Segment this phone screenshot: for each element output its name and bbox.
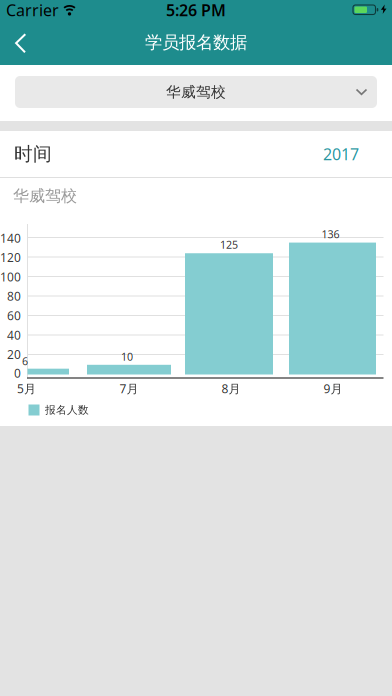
staticText: 136 [321, 227, 339, 241]
staticText: 120 [0, 249, 21, 265]
button[interactable]: 华威驾校 [15, 76, 377, 108]
staticText: 20 [7, 346, 21, 362]
staticText: 125 [220, 237, 238, 252]
staticText: Carrier [6, 0, 59, 21]
staticText: 40 [7, 327, 21, 343]
staticText: 报名人数 [45, 403, 89, 416]
staticText: 8月 [221, 380, 240, 396]
staticText: 80 [7, 288, 21, 304]
staticText: 华威驾校 [13, 186, 77, 206]
staticText: 6 [22, 354, 28, 368]
staticText: 5:26 PM [166, 0, 226, 21]
staticText: 100 [0, 269, 21, 285]
staticText: 时间 [14, 142, 52, 165]
staticText: 0 [14, 365, 21, 381]
button[interactable]: 时间 [0, 131, 392, 177]
staticText: 60 [7, 308, 21, 323]
staticText: 华威驾校 [166, 83, 226, 101]
staticText: 7月 [119, 380, 138, 396]
staticText: 140 [0, 230, 21, 246]
staticText: 学员报名数据 [145, 32, 247, 53]
staticText: 5月 [17, 380, 36, 396]
staticText: 10 [121, 349, 133, 364]
staticText: 2017 [323, 143, 359, 165]
button[interactable] [0, 23, 38, 61]
staticText: 9月 [323, 380, 342, 396]
